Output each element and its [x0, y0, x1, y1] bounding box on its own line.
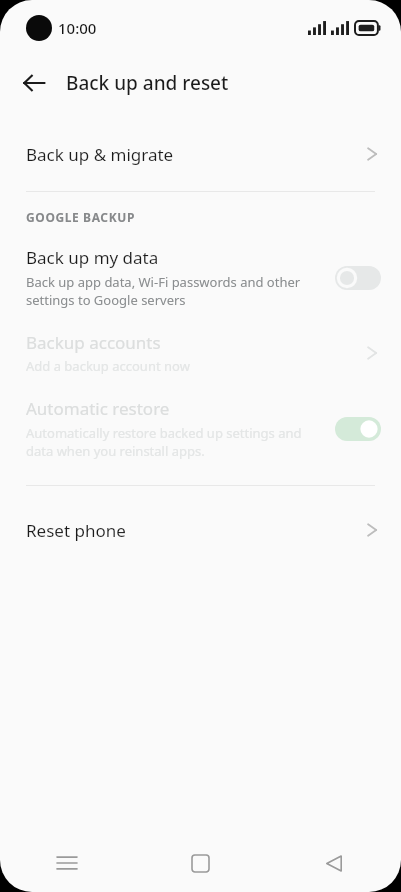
staticText: Back up and reset	[66, 70, 229, 96]
button[interactable]: Backup accounts	[0, 331, 401, 375]
button[interactable]: Automatic restore toggle	[335, 417, 381, 441]
button[interactable]: Reset phone	[0, 504, 401, 556]
staticText: GOOGLE BACKUP	[26, 209, 135, 225]
staticText: Backup accounts	[26, 331, 161, 354]
button[interactable]: Recent apps	[0, 837, 133, 889]
button[interactable]: Back up & migrate	[0, 125, 401, 183]
button[interactable]: Back up my data	[0, 246, 401, 309]
staticText: Reset phone	[26, 519, 126, 542]
button[interactable]: Back	[267, 837, 401, 889]
staticText: Automatically restore backed up settings…	[26, 424, 302, 460]
staticText: Add a backup account now	[26, 357, 190, 375]
button[interactable]: Back	[12, 61, 56, 105]
button[interactable]: Automatic restore	[0, 397, 401, 460]
button[interactable]: Home	[133, 837, 267, 889]
staticText: Back up & migrate	[26, 143, 174, 166]
staticText: 10:00	[58, 18, 97, 38]
staticText: Automatic restore	[26, 397, 170, 420]
button[interactable]: Back up my data toggle	[335, 266, 381, 290]
staticText: Back up my data	[26, 246, 159, 269]
staticText: Back up app data, Wi-Fi passwords and ot…	[26, 273, 301, 309]
